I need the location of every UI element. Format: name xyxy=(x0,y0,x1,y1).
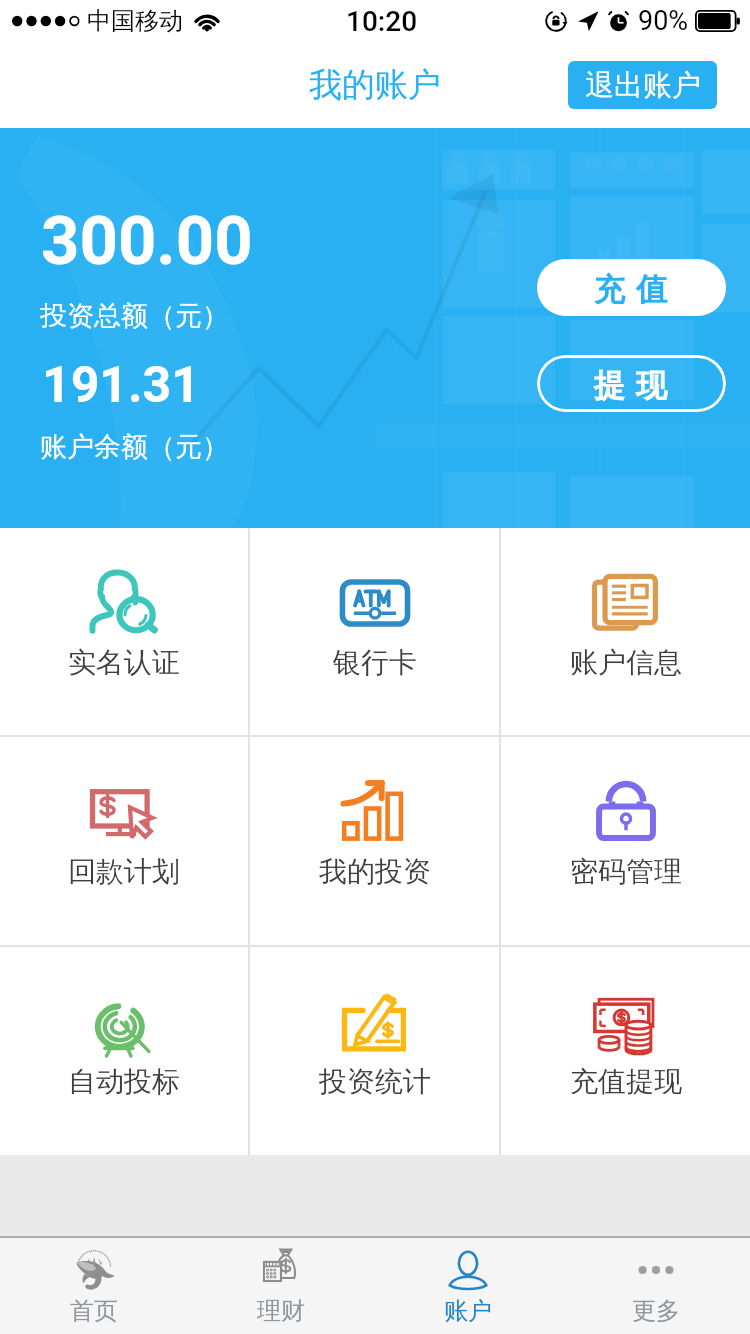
button[interactable]: 实名认证 xyxy=(0,528,248,735)
staticText: 充 值 xyxy=(594,267,669,309)
staticText: 账户余额（元） xyxy=(40,430,229,464)
staticText: 银行卡 xyxy=(333,645,417,680)
staticText: 提 现 xyxy=(594,363,669,405)
button[interactable]: 充 值 xyxy=(537,259,726,316)
staticText: 回款计划 xyxy=(68,854,180,889)
staticText: 退出账户 xyxy=(585,67,701,104)
button[interactable]: Finance xyxy=(187,1238,374,1334)
staticText: 投资统计 xyxy=(319,1064,431,1099)
staticText: 10:20 xyxy=(346,5,418,38)
staticText: 300.00 xyxy=(41,202,253,281)
button[interactable]: 退出账户 xyxy=(568,61,717,109)
button[interactable]: 回款计划 xyxy=(0,737,248,945)
button[interactable]: 自动投标 xyxy=(0,947,248,1155)
staticText: 自动投标 xyxy=(68,1064,180,1099)
staticText: 充值提现 xyxy=(570,1064,682,1099)
staticText: 投资总额（元） xyxy=(40,299,229,333)
button[interactable]: Home xyxy=(0,1238,187,1334)
button[interactable]: 密码管理 xyxy=(501,737,750,945)
staticText: 我的账户 xyxy=(309,64,441,106)
staticText: 我的投资 xyxy=(319,854,431,889)
button[interactable]: 账户信息 xyxy=(501,528,750,735)
button[interactable]: 投资统计 xyxy=(250,947,499,1155)
button[interactable]: More xyxy=(562,1238,750,1334)
staticText: 更多 xyxy=(632,1296,680,1326)
staticText: 理财 xyxy=(257,1296,305,1326)
staticText: 首页 xyxy=(70,1296,118,1326)
staticText: 密码管理 xyxy=(570,854,682,889)
button[interactable]: Account xyxy=(374,1238,562,1334)
staticText: 账户信息 xyxy=(570,645,682,680)
staticText: 中国移动 xyxy=(87,6,183,36)
button[interactable]: 充值提现 xyxy=(501,947,750,1155)
staticText: 191.31 xyxy=(42,356,200,415)
button[interactable]: 银行卡 xyxy=(250,528,499,735)
staticText: 实名认证 xyxy=(68,645,180,680)
button[interactable]: 提 现 xyxy=(537,355,726,412)
staticText: 账户 xyxy=(444,1296,492,1326)
button[interactable]: 我的投资 xyxy=(250,737,499,945)
staticText: 90% xyxy=(638,5,689,37)
